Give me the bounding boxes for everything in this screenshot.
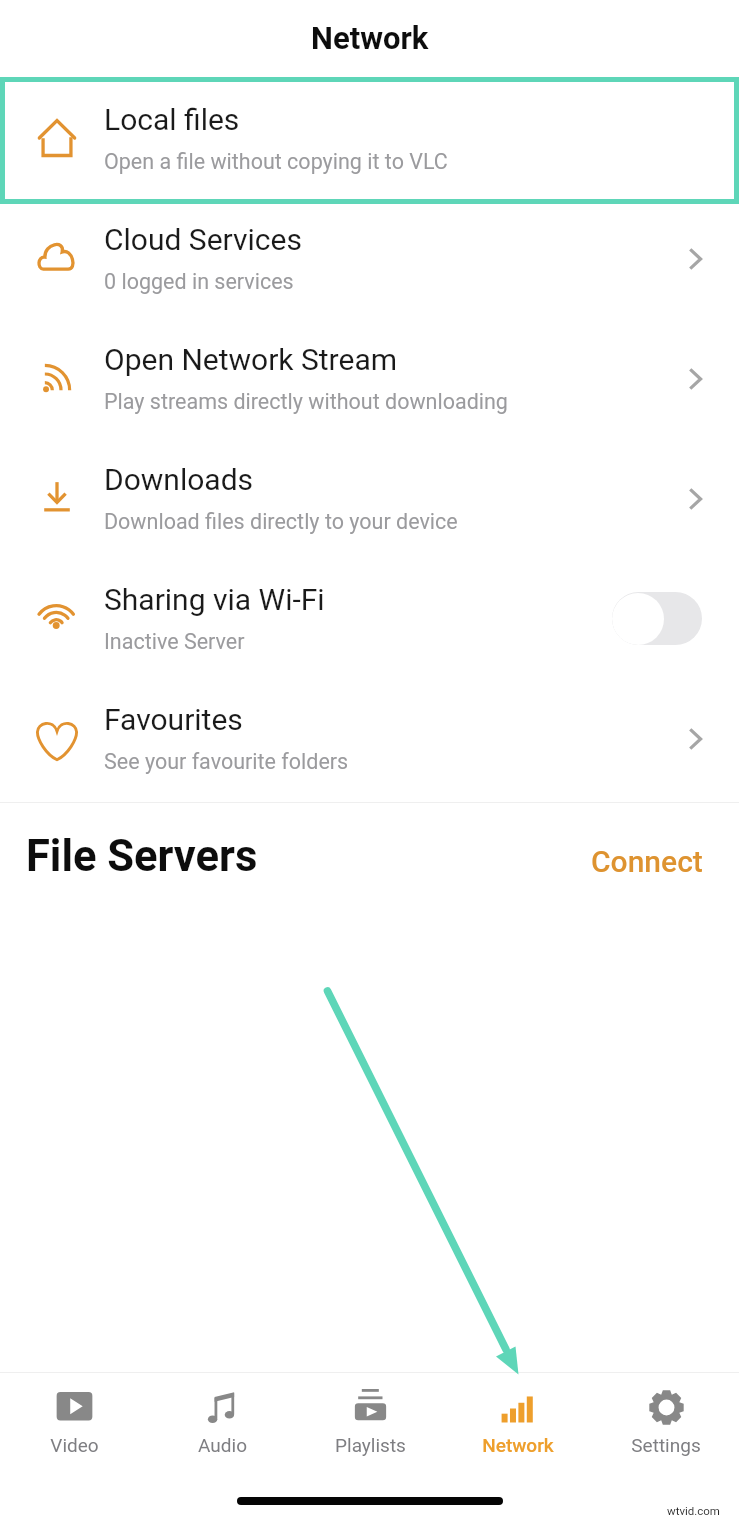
staticText: Settings [631, 1434, 701, 1456]
staticText: Open Network Stream [104, 342, 398, 377]
staticText: Video [50, 1434, 99, 1456]
staticText: Inactive Server [104, 629, 245, 654]
button[interactable]: Audio [148, 1373, 296, 1489]
staticText: Favourites [104, 702, 243, 737]
button[interactable]: Playlists [296, 1373, 444, 1489]
staticText: wtvid.com [667, 1504, 720, 1517]
button[interactable]: Connect [565, 834, 739, 889]
staticText: See your favourite folders [104, 749, 349, 774]
staticText: Download files directly to your device [104, 509, 458, 534]
staticText: Local files [104, 102, 240, 137]
button[interactable]: Cloud Services [0, 204, 739, 324]
other: Open [675, 204, 739, 324]
button[interactable]: Video [0, 1373, 148, 1489]
staticText: Network [311, 20, 429, 56]
staticText: Downloads [104, 462, 254, 497]
button[interactable]: Downloads [0, 444, 739, 564]
button[interactable]: Network [444, 1373, 592, 1489]
staticText: Connect [591, 844, 703, 879]
button[interactable]: Sharing via Wi-Fi [0, 564, 739, 684]
other: Open [675, 444, 739, 564]
staticText: Cloud Services [104, 222, 302, 257]
button[interactable]: Favourites [0, 684, 739, 804]
staticText: Sharing via Wi-Fi [104, 582, 325, 617]
staticText: Open a file without copying it to VLC [104, 149, 448, 174]
button[interactable]: Settings [592, 1373, 739, 1489]
button[interactable]: Toggle Wi-Fi sharing [612, 592, 702, 645]
other: Open [675, 324, 739, 444]
staticText: Network [482, 1434, 554, 1456]
other: Open [675, 684, 739, 804]
staticText: File Servers [26, 831, 258, 882]
staticText: Playlists [335, 1434, 406, 1456]
staticText: Audio [198, 1434, 247, 1456]
button[interactable]: Local files [0, 77, 739, 204]
staticText: Play streams directly without downloadin… [104, 389, 508, 414]
button[interactable]: Open Network Stream [0, 324, 739, 444]
staticText: 0 logged in services [104, 269, 294, 294]
